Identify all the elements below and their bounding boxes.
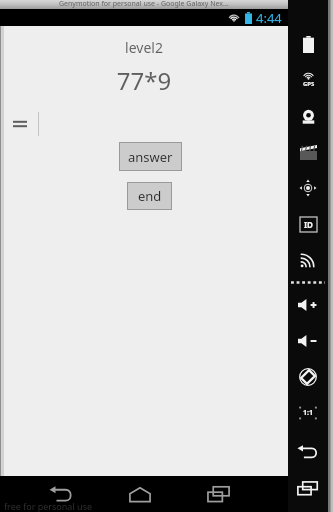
button[interactable]: Network bbox=[288, 242, 328, 278]
staticText: 4:44 bbox=[256, 9, 282, 26]
button[interactable]: D-pad bbox=[288, 170, 328, 206]
button[interactable]: Battery bbox=[288, 26, 328, 62]
staticText: ID bbox=[304, 219, 313, 230]
button[interactable]: Camera bbox=[288, 98, 328, 134]
button[interactable]: GPS bbox=[288, 62, 328, 98]
button[interactable]: Video bbox=[288, 134, 328, 170]
staticText: free for personal use bbox=[4, 500, 93, 512]
button[interactable]: answer bbox=[120, 143, 181, 170]
button[interactable]: Recent apps bbox=[288, 470, 328, 506]
button[interactable]: Home bbox=[100, 476, 179, 512]
staticText: 77*9 bbox=[0, 64, 288, 97]
staticText: GPS bbox=[303, 80, 315, 88]
button[interactable]: Volume down bbox=[288, 323, 328, 359]
button[interactable]: Recent apps bbox=[179, 476, 258, 512]
button[interactable]: Identifiers bbox=[288, 206, 328, 242]
button[interactable]: Back bbox=[22, 476, 100, 512]
staticText: 1:1 bbox=[303, 408, 313, 418]
button[interactable]: Volume up bbox=[288, 287, 328, 323]
button[interactable]: Rotate bbox=[288, 359, 328, 395]
button[interactable]: Scale 1 to 1 bbox=[288, 395, 328, 431]
staticText: answer bbox=[128, 148, 173, 166]
staticText: Genymotion for personal use - Google Gal… bbox=[59, 0, 229, 8]
button[interactable]: Back bbox=[288, 434, 328, 470]
staticText: level2 bbox=[0, 38, 288, 57]
staticText: end bbox=[138, 187, 162, 205]
button[interactable]: end bbox=[128, 183, 171, 209]
